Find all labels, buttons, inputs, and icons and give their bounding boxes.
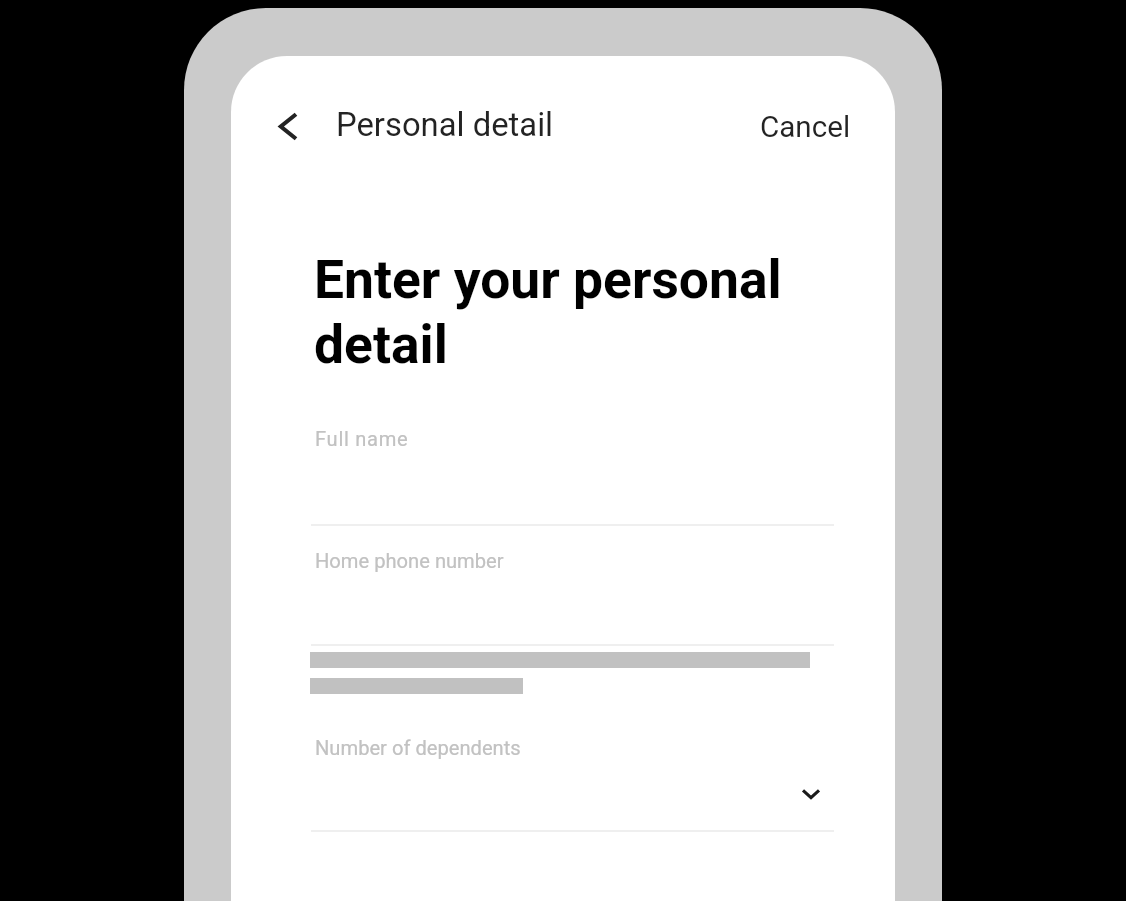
button[interactable]: Full name xyxy=(311,420,834,524)
staticText: Home phone number xyxy=(315,549,504,573)
staticText: detail xyxy=(314,313,448,376)
staticText: Enter your personal xyxy=(314,248,782,311)
button[interactable]: Cancel xyxy=(748,102,863,150)
button[interactable]: Back xyxy=(263,102,311,150)
staticText: Personal detail xyxy=(336,106,554,144)
staticText: Number of dependents xyxy=(315,736,521,760)
staticText: Full name xyxy=(315,427,409,451)
staticText: Cancel xyxy=(760,110,851,145)
button[interactable]: Number of dependents, dropdown xyxy=(311,727,834,829)
button[interactable]: Home phone number xyxy=(311,541,834,645)
